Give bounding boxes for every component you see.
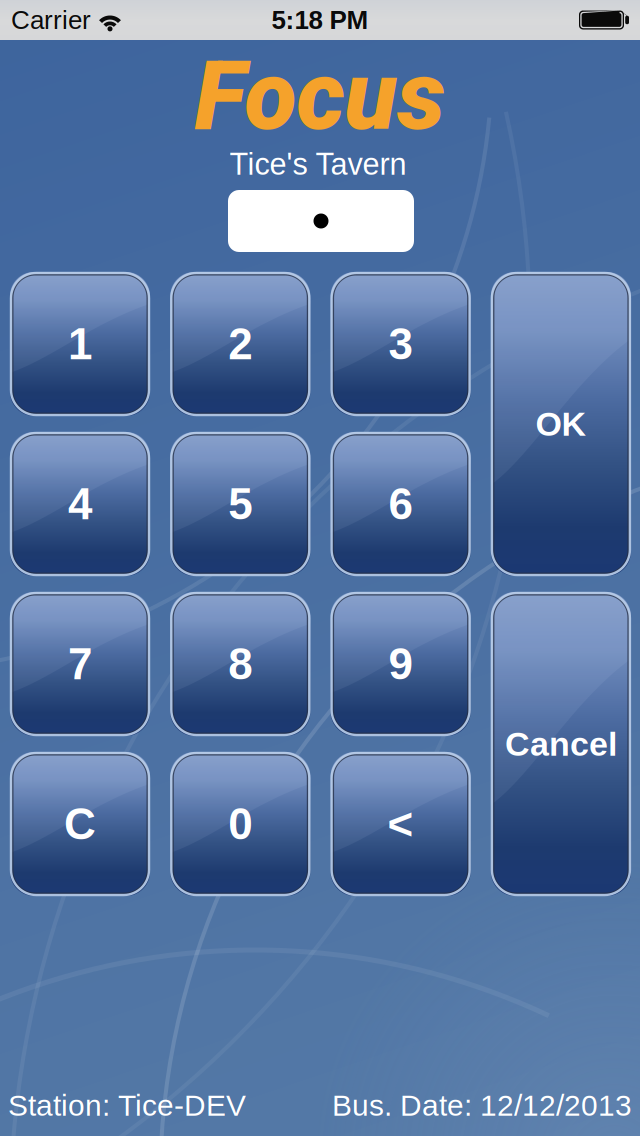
staticText: 4 xyxy=(68,479,92,529)
staticText: Focus xyxy=(194,40,445,152)
staticText: Tice's Tavern xyxy=(229,147,406,181)
button[interactable]: 5 xyxy=(170,432,310,576)
button[interactable]: 6 xyxy=(331,432,471,576)
staticText: 3 xyxy=(389,319,413,369)
button[interactable]: 0 xyxy=(170,752,310,896)
staticText: 2 xyxy=(228,319,252,369)
staticText: < xyxy=(388,799,414,849)
staticText: Station: Tice-DEV xyxy=(8,1089,246,1122)
staticText: Carrier xyxy=(11,5,91,34)
staticText: 1 xyxy=(68,319,92,369)
staticText: 6 xyxy=(389,479,413,529)
staticText: OK xyxy=(535,405,586,443)
button[interactable]: < xyxy=(331,752,471,896)
button[interactable]: 8 xyxy=(170,592,310,736)
button[interactable]: 7 xyxy=(10,592,150,736)
staticText: C xyxy=(64,799,96,849)
button[interactable]: 2 xyxy=(170,272,310,416)
button[interactable]: Cancel xyxy=(491,592,631,896)
staticText: 7 xyxy=(68,639,92,689)
staticText: Bus. Date: 12/12/2013 xyxy=(332,1089,632,1122)
staticText: Cancel xyxy=(505,725,617,763)
staticText: 5:18 PM xyxy=(271,5,368,34)
button[interactable]: 1 xyxy=(10,272,150,416)
staticText: 8 xyxy=(228,639,252,689)
button[interactable]: 3 xyxy=(331,272,471,416)
staticText: 5 xyxy=(228,479,252,529)
button[interactable]: OK xyxy=(491,272,631,576)
staticText: 9 xyxy=(389,639,413,689)
staticText: 0 xyxy=(228,799,252,849)
button[interactable]: 9 xyxy=(331,592,471,736)
button[interactable]: C xyxy=(10,752,150,896)
button[interactable]: 4 xyxy=(10,432,150,576)
